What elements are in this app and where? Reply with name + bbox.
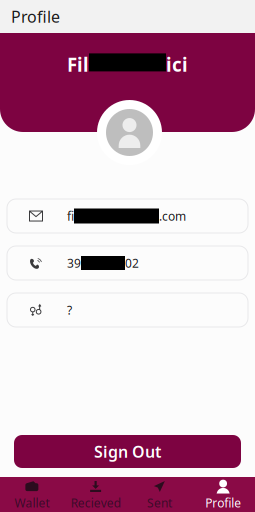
staticText: .com: [159, 208, 186, 224]
staticText: Sent: [147, 495, 172, 511]
staticText: 02: [125, 255, 139, 271]
staticText: fi: [67, 208, 74, 224]
staticText: Profile: [11, 6, 60, 27]
staticText: ?: [67, 302, 72, 318]
button[interactable]: Sent: [127, 476, 191, 512]
staticText: Fil: [67, 52, 89, 77]
button[interactable]: ?: [7, 293, 248, 327]
staticText: ici: [166, 52, 188, 77]
button[interactable]: Wallet: [0, 476, 64, 512]
button[interactable]: Sign Out: [14, 435, 241, 468]
staticText: Wallet: [14, 495, 49, 511]
staticText: 39: [67, 255, 81, 271]
staticText: Profile: [205, 495, 241, 511]
staticText: Sign Out: [94, 441, 161, 462]
staticText: Recieved: [71, 495, 121, 511]
button[interactable]: Profile: [191, 476, 255, 512]
button[interactable]: 39: [7, 246, 248, 280]
button[interactable]: Recieved: [64, 476, 128, 512]
button[interactable]: fi: [7, 199, 248, 233]
